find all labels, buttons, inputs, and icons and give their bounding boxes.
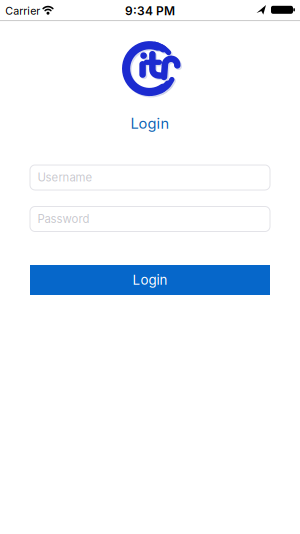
button[interactable]: Login [30,265,270,295]
textField[interactable]: Password [30,206,270,231]
textField[interactable]: Username [30,165,270,190]
staticText: Password [37,212,89,226]
staticText: Carrier [5,4,40,17]
staticText: Login [132,272,167,288]
staticText: Login [130,115,169,132]
staticText: 9:34 PM [125,3,175,18]
staticText: Username [37,171,92,184]
